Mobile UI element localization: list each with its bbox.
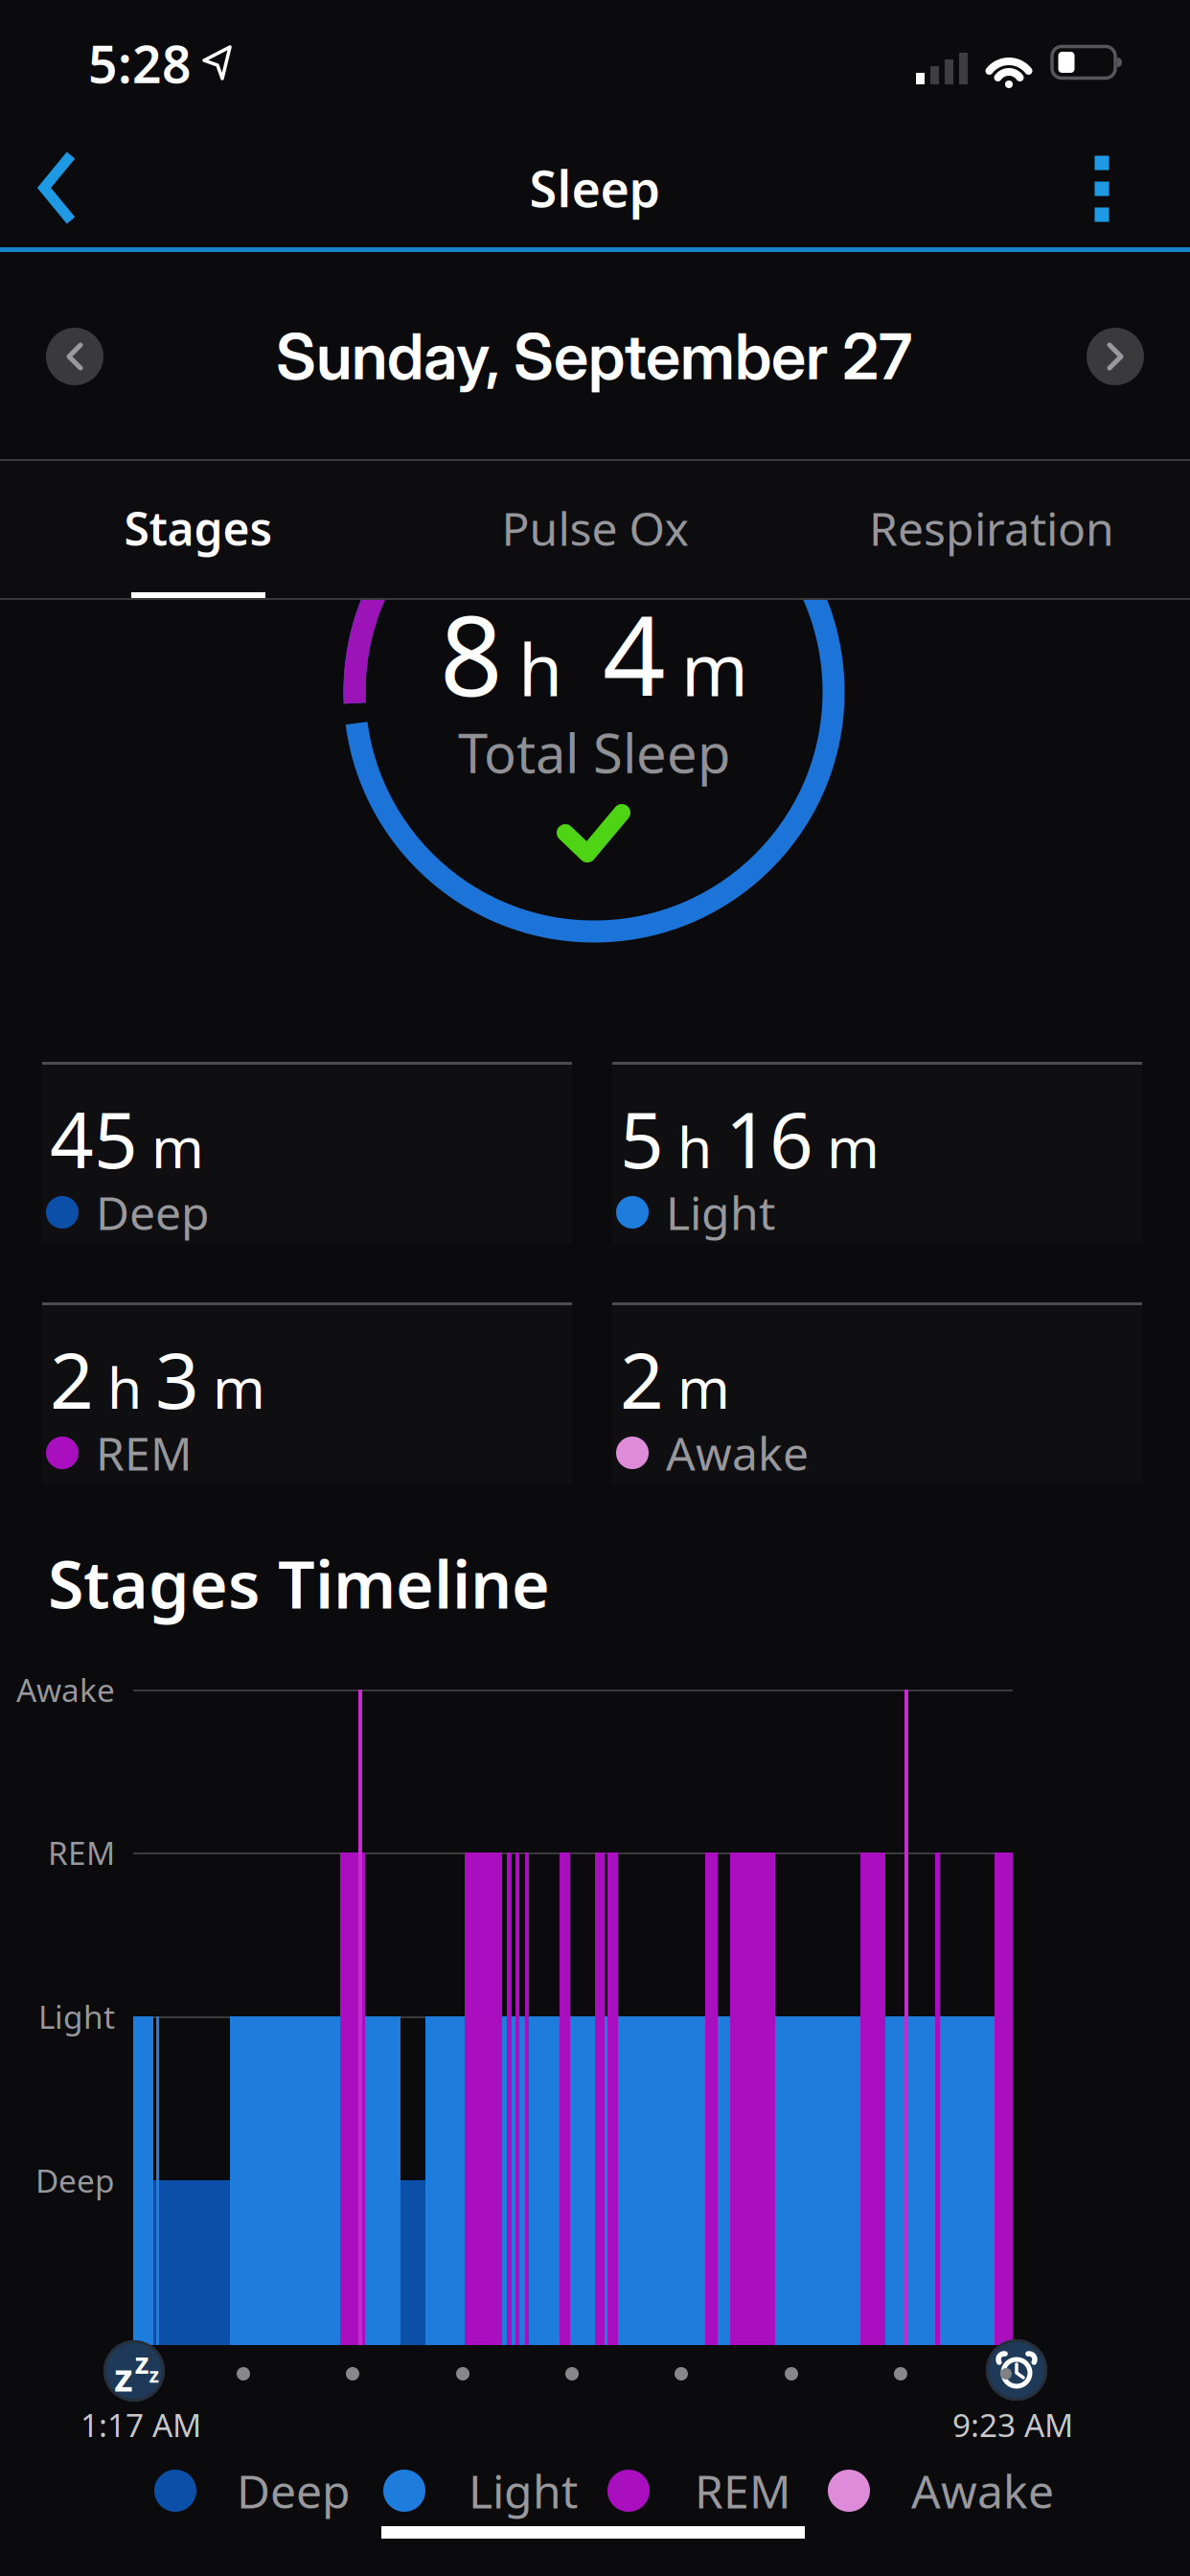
staticText: Pulse Ox	[502, 497, 688, 559]
staticText: 45	[50, 1088, 138, 1189]
staticText: m	[681, 621, 748, 716]
staticText: 9:23 AM	[952, 2403, 1073, 2446]
staticText: 5:28	[88, 29, 192, 97]
staticText: Respiration	[869, 497, 1114, 559]
button[interactable]: More options	[1095, 156, 1109, 222]
staticText: REM	[695, 2460, 791, 2521]
staticText: h	[518, 621, 562, 716]
staticText: m	[213, 1350, 265, 1424]
staticText: 1:17 AM	[80, 2403, 201, 2446]
button[interactable]: Respiration	[793, 461, 1190, 595]
staticText: Awake	[666, 1422, 809, 1483]
staticText: Stages	[124, 497, 273, 559]
button[interactable]: Back	[0, 130, 115, 245]
staticText: z	[149, 2361, 160, 2388]
staticText: m	[827, 1109, 880, 1184]
staticText: h	[107, 1350, 142, 1424]
staticText: h	[677, 1109, 712, 1184]
staticText: Awake	[911, 2460, 1054, 2521]
staticText: Light	[469, 2460, 578, 2521]
staticText: Total Sleep	[458, 717, 730, 788]
staticText: 2	[620, 1328, 664, 1430]
staticText: 2	[50, 1328, 94, 1430]
staticText: Deep	[237, 2460, 351, 2521]
staticText: 3	[155, 1328, 199, 1430]
button[interactable]: Pulse Ox	[397, 461, 793, 595]
staticText: m	[151, 1109, 204, 1184]
staticText: Sunday, September 27	[276, 319, 912, 394]
staticText: z	[135, 2343, 149, 2382]
button[interactable]: Previous day	[46, 328, 103, 385]
staticText: Deep	[35, 2159, 115, 2201]
staticText: m	[677, 1350, 730, 1424]
staticText: Sleep	[529, 155, 661, 221]
staticText: Stages Timeline	[48, 1540, 550, 1626]
button[interactable]: Stages	[0, 461, 397, 595]
staticText: 8	[440, 581, 503, 727]
staticText: z	[114, 2351, 133, 2402]
staticText: Awake	[16, 1668, 115, 1711]
staticText: 16	[725, 1088, 813, 1189]
staticText: Deep	[96, 1182, 210, 1243]
staticText: 4	[603, 581, 666, 727]
button[interactable]: Next day	[1087, 328, 1144, 385]
staticText: 5	[620, 1088, 664, 1189]
staticText: REM	[96, 1422, 193, 1483]
staticText: REM	[48, 1831, 115, 1874]
staticText: Light	[666, 1182, 775, 1243]
staticText: Light	[38, 1995, 115, 2038]
